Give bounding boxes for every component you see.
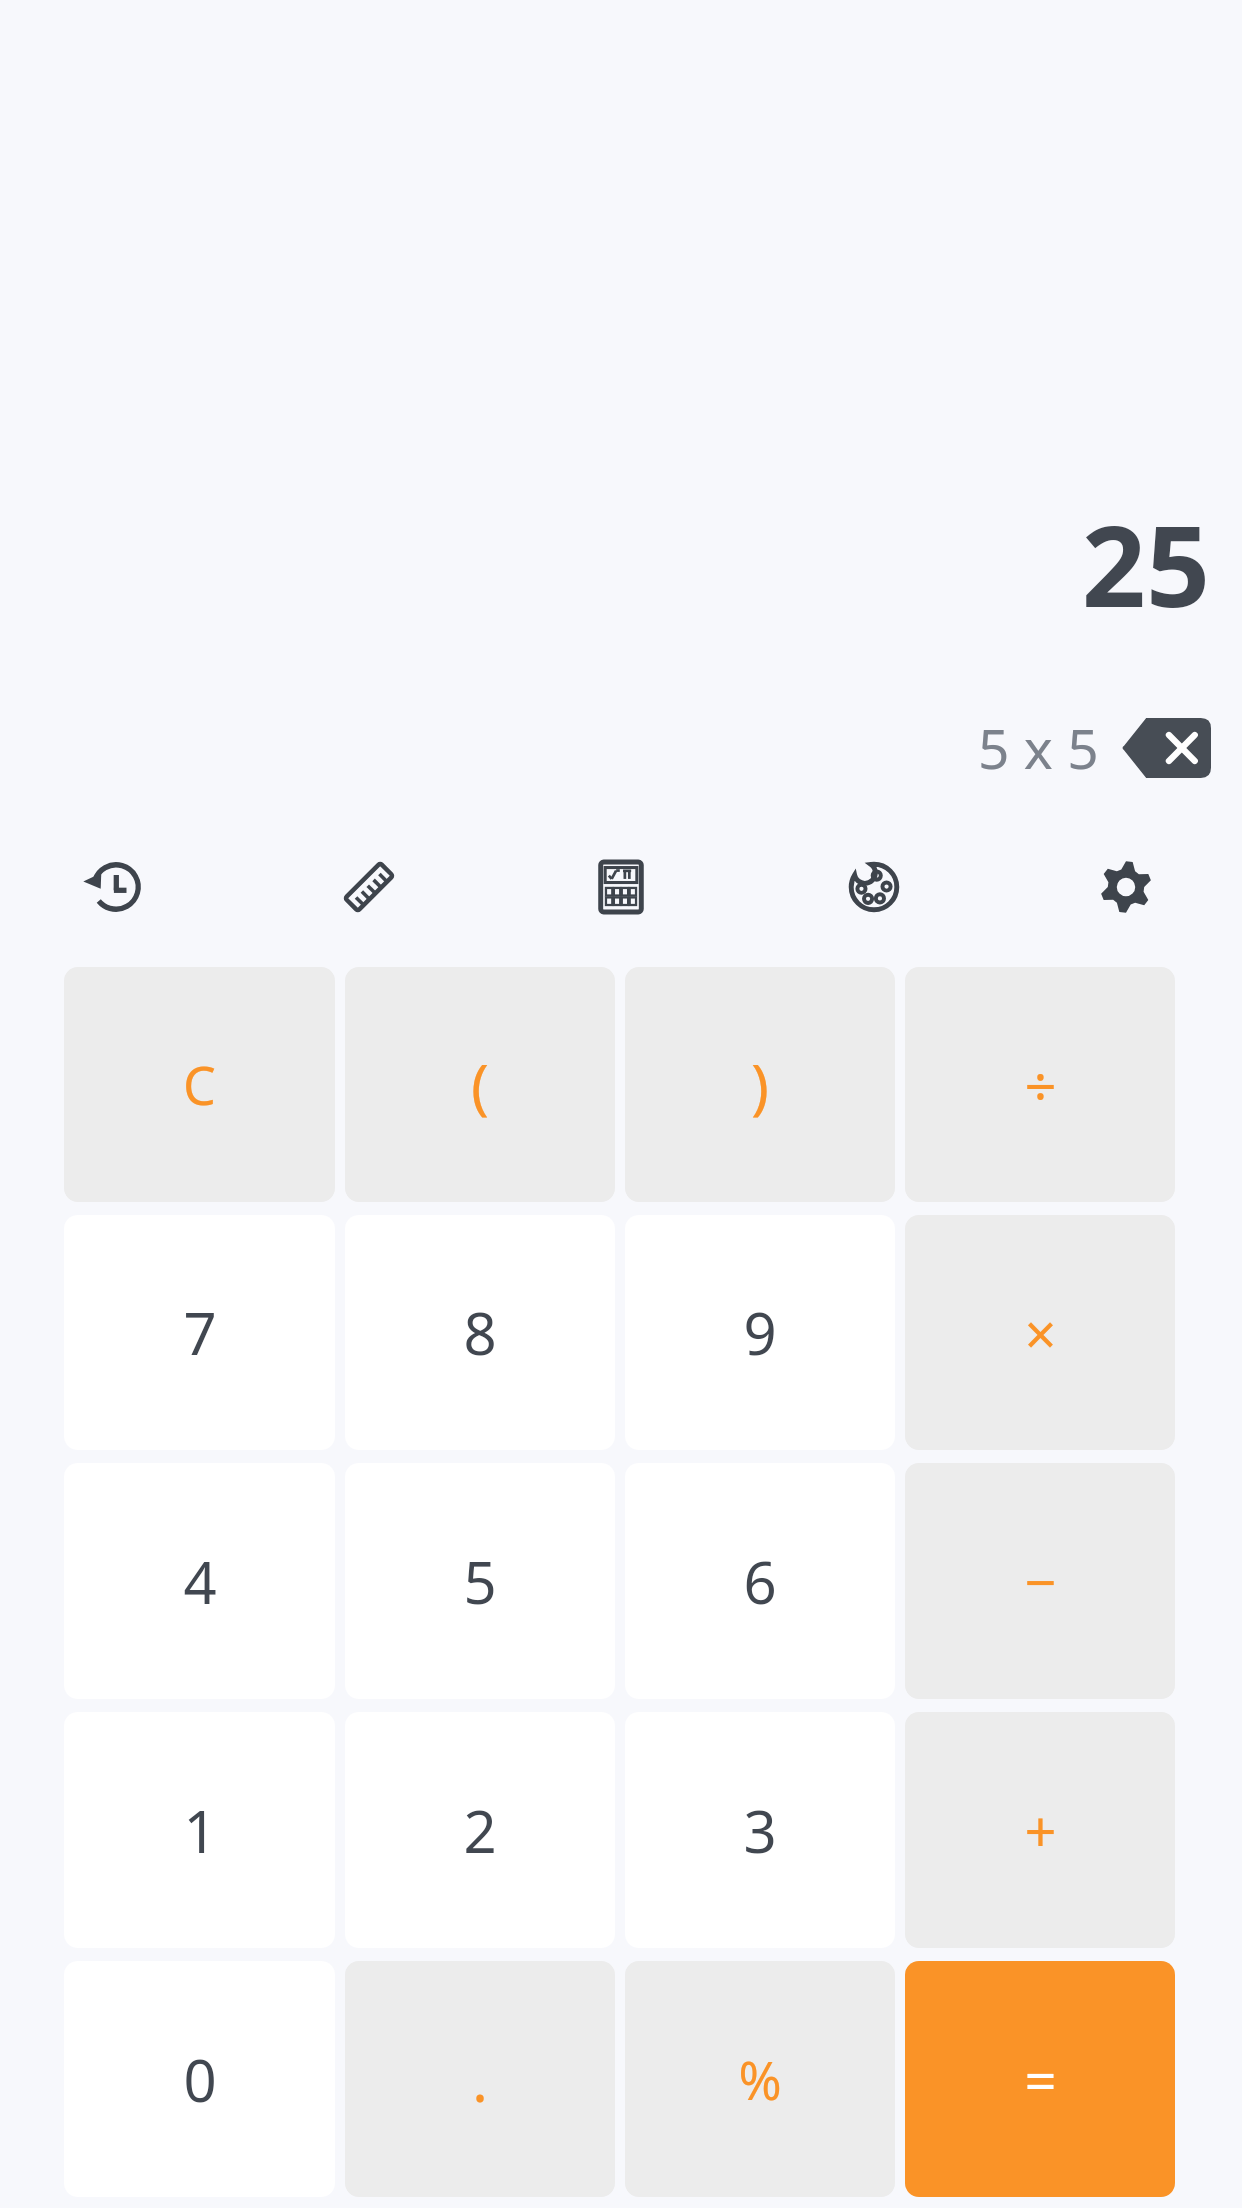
button[interactable]: ( <box>345 967 615 1202</box>
button[interactable]: Backspace <box>1121 717 1211 779</box>
button[interactable]: 1 <box>64 1712 335 1948</box>
staticText: = <box>1024 2041 1057 2117</box>
staticText: 5 x 5 <box>978 710 1099 785</box>
button[interactable]: 3 <box>625 1712 895 1948</box>
staticText: 8 <box>463 1293 497 1372</box>
button[interactable]: % <box>625 1961 895 2197</box>
button[interactable]: ) <box>625 967 895 1202</box>
staticText: 6 <box>743 1542 777 1621</box>
staticText: . <box>472 2040 488 2119</box>
staticText: C <box>183 1049 216 1120</box>
staticText: ÷ <box>1024 1047 1057 1123</box>
button[interactable]: Unit converter <box>317 835 421 939</box>
button[interactable]: 2 <box>345 1712 615 1948</box>
button[interactable]: 8 <box>345 1215 615 1450</box>
button[interactable]: + <box>905 1712 1175 1948</box>
button[interactable]: 6 <box>625 1463 895 1699</box>
button[interactable]: 5 <box>345 1463 615 1699</box>
button[interactable]: . <box>345 1961 615 2197</box>
staticText: 25 <box>1081 487 1210 640</box>
button[interactable]: C <box>64 967 335 1202</box>
button[interactable]: 4 <box>64 1463 335 1699</box>
staticText: 5 <box>463 1542 497 1621</box>
button[interactable]: − <box>905 1463 1175 1699</box>
button[interactable]: 9 <box>625 1215 895 1450</box>
staticText: + <box>1024 1792 1057 1868</box>
staticText: ) <box>751 1044 769 1126</box>
button[interactable]: 0 <box>64 1961 335 2197</box>
staticText: 4 <box>183 1542 217 1621</box>
staticText: 2 <box>463 1791 497 1870</box>
button[interactable]: Settings <box>1074 835 1178 939</box>
staticText: − <box>1024 1543 1057 1619</box>
staticText: 0 <box>183 2040 217 2119</box>
staticText: % <box>738 2044 782 2115</box>
staticText: ( <box>471 1044 489 1126</box>
button[interactable]: 7 <box>64 1215 335 1450</box>
button[interactable]: Scientific calculator <box>569 835 673 939</box>
staticText: × <box>1024 1295 1057 1371</box>
button[interactable]: History <box>64 835 168 939</box>
button[interactable]: × <box>905 1215 1175 1450</box>
staticText: 7 <box>183 1293 217 1372</box>
button[interactable]: Themes <box>822 835 926 939</box>
staticText: 1 <box>183 1791 217 1870</box>
button[interactable]: = <box>905 1961 1175 2197</box>
staticText: 3 <box>743 1791 777 1870</box>
staticText: 9 <box>743 1293 777 1372</box>
button[interactable]: ÷ <box>905 967 1175 1202</box>
